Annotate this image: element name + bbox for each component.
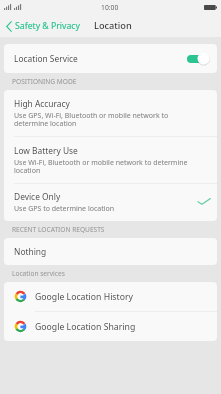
button[interactable]: Location Service	[4, 44, 217, 73]
staticText: Safety & Privacy	[15, 20, 80, 32]
button[interactable]: Google Location History	[4, 282, 217, 311]
button[interactable]: Nothing	[4, 238, 217, 265]
staticText: Low Battery Use	[14, 145, 78, 156]
button[interactable]: Back	[0, 20, 84, 32]
staticText: High Accuracy	[14, 98, 70, 109]
button[interactable]: Google Location Sharing	[4, 312, 217, 341]
staticText: POSITIONING MODE	[12, 77, 77, 86]
staticText: Location Service	[14, 53, 78, 64]
staticText: RECENT LOCATION REQUESTS	[12, 225, 105, 234]
staticText: Location services	[12, 269, 65, 278]
staticText: Use Wi-Fi, Bluetooth or mobile network t…	[14, 158, 188, 175]
button[interactable]: Location Service toggle	[187, 52, 210, 65]
staticText: Google Location History	[35, 291, 133, 303]
button[interactable]: Device Only	[4, 184, 217, 221]
button[interactable]: High Accuracy	[4, 90, 217, 136]
staticText: Use GPS to determine location	[14, 204, 115, 214]
other: Selected	[197, 197, 211, 206]
staticText: Nothing	[14, 246, 47, 257]
button[interactable]: Low Battery Use	[4, 137, 217, 183]
staticText: Location	[94, 19, 132, 32]
staticText: Google Location Sharing	[35, 321, 136, 333]
other: Back	[6, 21, 12, 32]
staticText: 10:00	[101, 3, 119, 12]
staticText: Device Only	[14, 191, 61, 202]
staticText: Use GPS, Wi-Fi, Bluetooth or mobile netw…	[14, 111, 169, 128]
